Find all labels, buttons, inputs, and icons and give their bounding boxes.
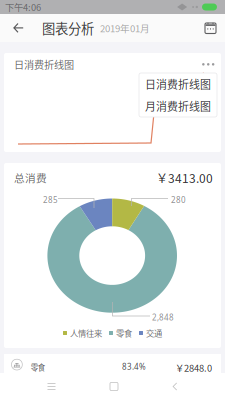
button[interactable]: Recent apps bbox=[40, 376, 62, 397]
staticText: 日消费折线图 bbox=[14, 57, 74, 72]
staticText: 零食 bbox=[31, 362, 45, 373]
button[interactable]: Home bbox=[103, 375, 125, 397]
button[interactable]: Back bbox=[0, 14, 32, 41]
button[interactable]: 零食 bbox=[4, 354, 221, 373]
staticText: 285 bbox=[43, 194, 58, 205]
staticText: 交通 bbox=[146, 327, 162, 339]
staticText: 月消费折线图 bbox=[145, 98, 211, 114]
staticText: 日消费折线图 bbox=[145, 76, 211, 92]
button[interactable]: Back bbox=[165, 375, 184, 397]
staticText: 零食 bbox=[116, 327, 132, 339]
staticText: 下午4:06 bbox=[5, 0, 41, 14]
staticText: ￥3413.00 bbox=[156, 169, 213, 186]
button[interactable]: 日消费折线图 bbox=[139, 73, 217, 95]
staticText: 总消费 bbox=[14, 170, 47, 185]
button[interactable]: 月消费折线图 bbox=[139, 95, 217, 117]
button[interactable]: More options bbox=[199, 59, 217, 70]
staticText: 2,848 bbox=[152, 312, 174, 323]
staticText: 83.4% bbox=[122, 361, 146, 372]
staticText: 280 bbox=[171, 194, 186, 205]
button[interactable]: Select month bbox=[197, 14, 224, 41]
staticText: 人情往来 bbox=[70, 327, 102, 339]
staticText: 图表分析 bbox=[42, 18, 94, 38]
staticText: 2019年01月 bbox=[100, 21, 150, 35]
staticText: ￥2848.0 bbox=[175, 361, 212, 374]
